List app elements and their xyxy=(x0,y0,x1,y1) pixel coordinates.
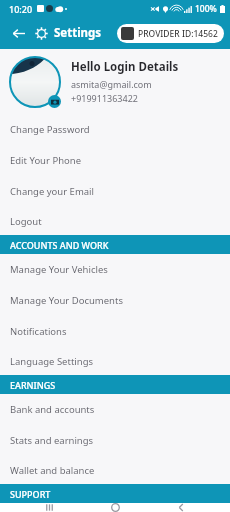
staticText: Hello Login Details xyxy=(71,59,179,75)
staticText: Notifications xyxy=(10,325,67,338)
button[interactable]: Wallet and balance xyxy=(0,456,230,484)
button[interactable]: Change Password xyxy=(0,114,230,145)
staticText: 100% xyxy=(195,3,217,15)
staticText: Bank and accounts xyxy=(10,403,95,416)
staticText: Stats and earnings xyxy=(10,434,94,447)
button[interactable]: Language Settings xyxy=(0,347,230,375)
staticText: Settings xyxy=(54,25,102,41)
button[interactable]: Back xyxy=(164,503,198,512)
button[interactable]: Back xyxy=(8,23,28,43)
button[interactable]: Manage Your Vehicles xyxy=(0,254,230,285)
button[interactable]: Logout xyxy=(0,207,230,235)
staticText: Change your Email xyxy=(10,185,94,198)
staticText: Manage Your Vehicles xyxy=(10,263,108,276)
staticText: ACCOUNTS AND WORK xyxy=(10,239,109,251)
button[interactable]: Profile photo xyxy=(10,57,60,107)
staticText: Manage Your Documents xyxy=(10,294,123,307)
button[interactable]: Stats and earnings xyxy=(0,425,230,456)
button[interactable]: Bank and accounts xyxy=(0,394,230,425)
staticText: asmita@gmail.com xyxy=(71,78,152,90)
staticText: EARNINGS xyxy=(10,379,56,391)
staticText: Wallet and balance xyxy=(10,464,95,477)
staticText: +919911363422 xyxy=(71,92,138,104)
staticText: Edit Your Phone xyxy=(10,154,81,167)
staticText: SUPPORT xyxy=(10,488,51,500)
staticText: Change Password xyxy=(10,123,90,136)
button[interactable]: Recents xyxy=(32,503,66,512)
button[interactable]: Notifications xyxy=(0,316,230,347)
button[interactable]: PROVIDER ID:14562 xyxy=(117,24,224,43)
button[interactable]: Change your Email xyxy=(0,176,230,207)
staticText: PROVIDER ID:14562 xyxy=(138,28,218,40)
button[interactable]: Manage Your Documents xyxy=(0,285,230,316)
staticText: Language Settings xyxy=(10,355,94,368)
staticText: 10:20 xyxy=(9,3,33,15)
button[interactable]: Edit Your Phone xyxy=(0,145,230,176)
button[interactable]: Home xyxy=(98,503,132,512)
button[interactable]: Settings xyxy=(35,25,102,41)
staticText: Logout xyxy=(10,215,42,228)
